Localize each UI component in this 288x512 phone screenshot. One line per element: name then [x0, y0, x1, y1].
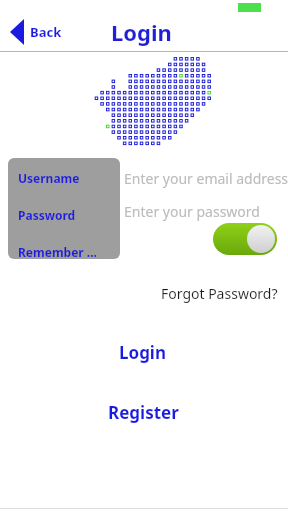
staticText: Forgot Password? — [161, 284, 278, 303]
staticText: Login — [119, 341, 167, 364]
button[interactable]: Enter your email address — [124, 165, 288, 191]
staticText: Enter your password — [124, 202, 260, 221]
staticText: Login — [111, 17, 172, 47]
button[interactable]: Enter your password — [124, 198, 288, 224]
button[interactable]: Login — [119, 341, 167, 364]
button[interactable]: Register — [108, 401, 179, 424]
staticText: Back — [30, 23, 62, 41]
staticText: Remember ... — [18, 244, 97, 259]
staticText: Register — [108, 401, 179, 424]
button[interactable]: Back — [10, 19, 62, 45]
button[interactable]: Remember me toggle, on — [213, 223, 277, 255]
staticText: Enter your email address — [124, 169, 288, 188]
staticText: Password — [18, 207, 76, 223]
button[interactable]: Forgot Password? — [161, 284, 278, 303]
staticText: Username — [18, 170, 80, 186]
